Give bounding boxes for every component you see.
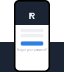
staticText: Forgot your password? — [17, 48, 47, 52]
button[interactable] — [21, 41, 43, 46]
